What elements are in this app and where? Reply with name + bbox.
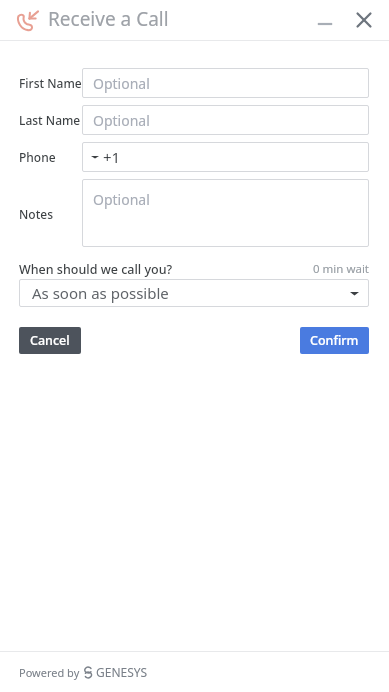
staticText: Optional (93, 111, 150, 130)
staticText: Receive a Call (48, 6, 169, 32)
staticText: As soon as possible (32, 283, 169, 303)
staticText: GENESYS (96, 664, 148, 680)
button[interactable]: As soon as possible (19, 279, 369, 307)
staticText: Powered by (19, 665, 83, 680)
staticText: Confirm (310, 332, 359, 349)
staticText: When should we call you? (19, 261, 173, 278)
staticText: Notes (19, 206, 53, 222)
button[interactable]: Cancel (19, 327, 81, 354)
button[interactable]: Optional (82, 179, 369, 247)
button[interactable]: +1 (82, 142, 369, 172)
button[interactable]: Optional (82, 68, 369, 98)
staticText: Optional (93, 74, 150, 93)
staticText: Phone (19, 149, 56, 165)
staticText: Last Name (19, 112, 81, 128)
button[interactable]: Optional (82, 105, 369, 135)
button[interactable]: Minimize (310, 6, 340, 36)
staticText: 0 min wait (300, 261, 369, 277)
staticText: Optional (93, 190, 150, 209)
staticText: First Name (19, 75, 82, 91)
button[interactable]: Close (350, 6, 378, 34)
staticText: +1 (103, 147, 121, 167)
button[interactable]: Confirm (300, 327, 369, 354)
staticText: Cancel (30, 332, 70, 349)
